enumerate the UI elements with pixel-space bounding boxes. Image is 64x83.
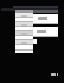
button[interactable] [15, 31, 33, 36]
button[interactable] [15, 36, 33, 40]
button[interactable] [15, 22, 33, 27]
button[interactable]: Page indicator [51, 73, 58, 76]
button[interactable] [15, 13, 33, 18]
button[interactable] [1, 8, 58, 11]
button[interactable] [15, 45, 33, 50]
button[interactable] [15, 18, 33, 22]
button[interactable] [15, 40, 33, 45]
button[interactable] [15, 27, 33, 31]
button[interactable] [33, 14, 58, 24]
button[interactable] [33, 27, 58, 37]
